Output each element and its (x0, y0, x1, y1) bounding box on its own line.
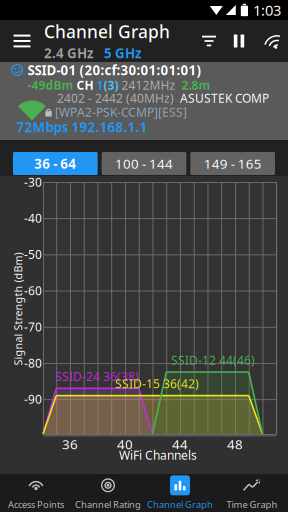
staticText: SSID-24 36(38) (55, 368, 139, 384)
staticText: 72Mbps 192.168.1.1 (16, 118, 147, 136)
staticText: Channel Graph (147, 498, 213, 511)
button[interactable]: 149 - 165 (190, 152, 275, 175)
staticText: SSID-12 44(46) (171, 352, 255, 368)
staticText: 2402 - 2442 (40MHz) (57, 90, 174, 106)
staticText: 2.8m (175, 77, 210, 93)
staticText: WiFi Channels (119, 447, 197, 463)
staticText: -70 (24, 319, 42, 335)
button[interactable]: Time Graph (216, 474, 288, 512)
staticText: -90 (24, 391, 42, 407)
staticText: 5 GHz (104, 44, 142, 62)
staticText: SSID-15 36(42) (115, 376, 199, 391)
button[interactable]: 100 - 144 (102, 152, 186, 175)
staticText: Time Graph (226, 498, 277, 511)
staticText: 1:03 (253, 0, 281, 20)
staticText: 36 (62, 435, 78, 453)
staticText: Channel Rating (75, 498, 141, 511)
staticText: -60 (24, 283, 42, 298)
staticText: [WPA2-PSK-CCMP][ESS] (55, 104, 187, 120)
staticText: 40 (117, 435, 133, 453)
staticText: Signal Strength (dBm) (0, 302, 74, 316)
staticText: 48 (227, 435, 243, 453)
button[interactable]: Channel Graph (144, 474, 216, 512)
staticText: 44 (172, 435, 188, 453)
button[interactable]: Open navigation menu (0, 20, 44, 62)
button[interactable]: Pause scanning (224, 20, 254, 62)
button[interactable]: 2.4 GHz (44, 44, 94, 62)
button[interactable]: Wi-Fi band scan (254, 20, 284, 62)
staticText: ASUSTEK COMP (174, 90, 269, 106)
staticText: -30 (24, 174, 42, 190)
staticText: 100 - 144 (115, 155, 173, 172)
button[interactable]: 36 - 64 (13, 152, 98, 175)
staticText: CH (73, 77, 96, 93)
staticText: Access Points (8, 498, 64, 511)
button[interactable]: Filter access points (194, 20, 224, 62)
button[interactable]: 5 GHz (104, 44, 142, 62)
button[interactable]: Channel Rating (72, 474, 144, 512)
staticText: 2412MHz (118, 77, 175, 93)
staticText: 149 - 165 (204, 155, 262, 172)
staticText: -50 (24, 246, 42, 262)
staticText: SSID-01 (20:cf:30:01:01:01) (27, 61, 201, 79)
staticText: 36 - 64 (34, 155, 76, 172)
staticText: -80 (24, 355, 42, 371)
staticText: -40 (24, 210, 42, 226)
staticText: 2.4 GHz (44, 44, 94, 62)
staticText: 1 (96, 77, 103, 93)
button[interactable]: Access Points (0, 474, 72, 512)
staticText: (3) (103, 77, 118, 93)
staticText: -49dBm (27, 77, 73, 93)
staticText: Channel Graph (44, 20, 170, 43)
